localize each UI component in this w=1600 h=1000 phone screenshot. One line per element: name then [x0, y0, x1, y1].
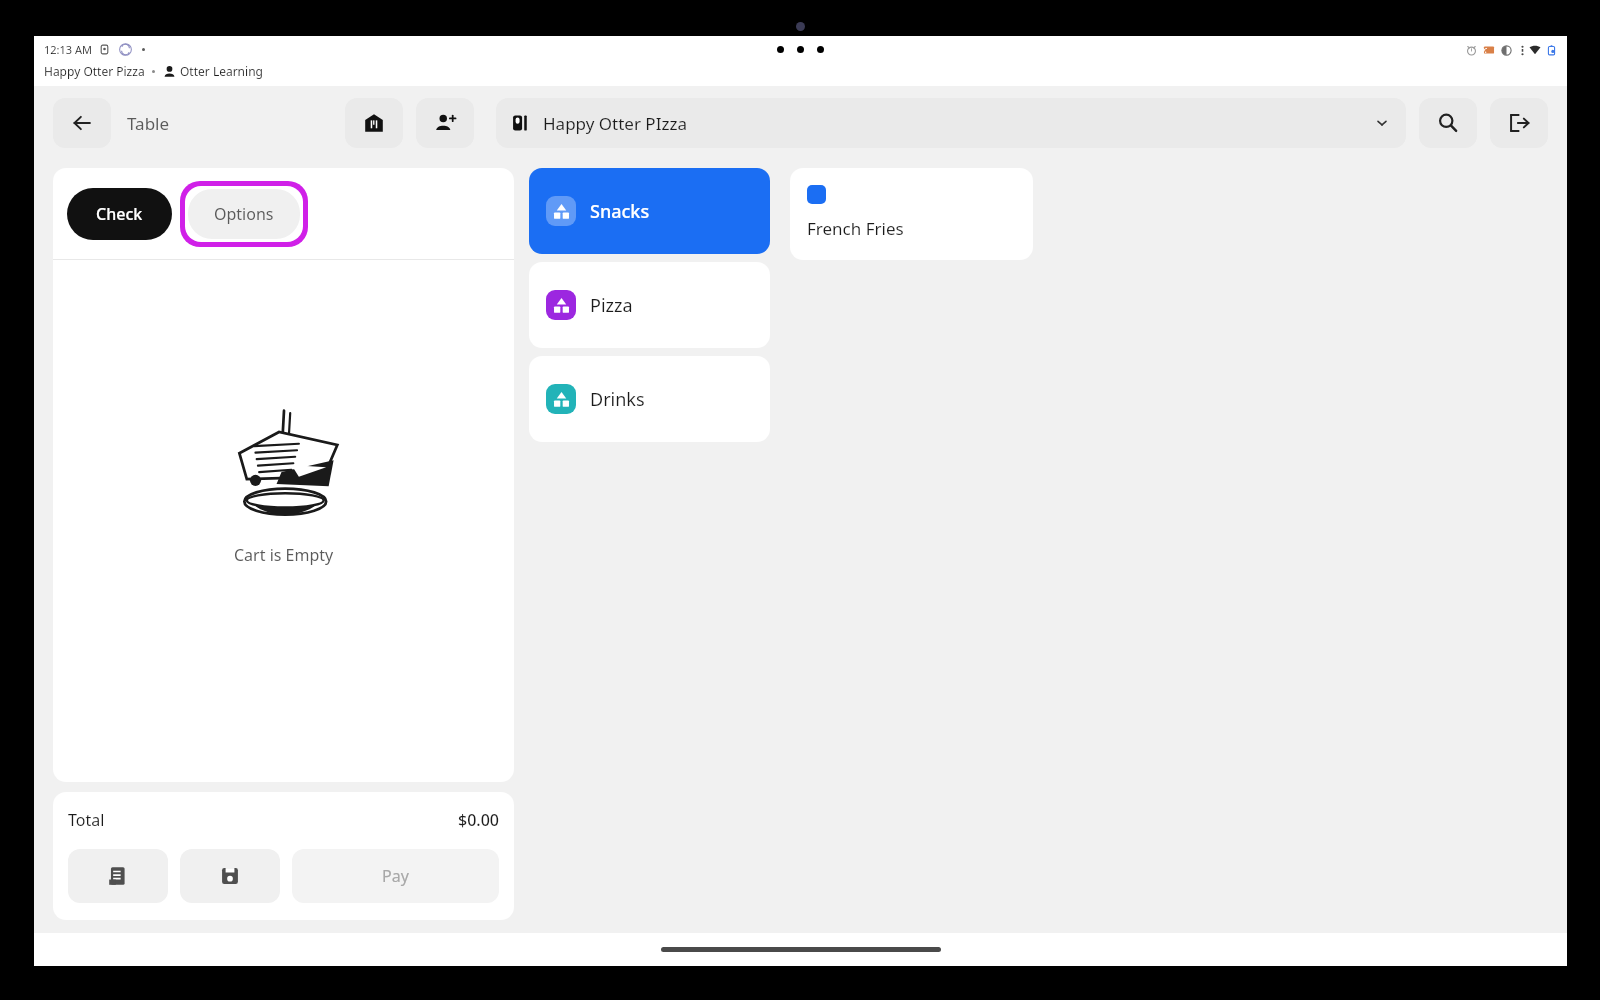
- button[interactable]: Add guest: [416, 98, 474, 148]
- staticText: Check: [96, 203, 143, 225]
- staticText: Snacks: [590, 199, 650, 224]
- staticText: 12:13 AM: [44, 42, 92, 57]
- staticText: Pizza: [590, 293, 633, 318]
- button[interactable]: Snacks: [529, 168, 770, 254]
- button[interactable]: Log out: [1490, 98, 1548, 148]
- button[interactable]: Options: [188, 189, 300, 239]
- button[interactable]: Pizza: [529, 262, 770, 348]
- button[interactable]: Back: [53, 98, 111, 148]
- staticText: Happy Otter Pizza: [44, 63, 145, 79]
- button[interactable]: Drinks: [529, 356, 770, 442]
- button[interactable]: Save: [180, 849, 280, 903]
- button[interactable]: Happy Otter PIzza: [496, 98, 1406, 148]
- button[interactable]: Search: [1419, 98, 1477, 148]
- staticText: Total: [68, 809, 105, 831]
- staticText: Cart is Empty: [234, 544, 334, 566]
- staticText: Otter Learning: [180, 63, 263, 79]
- button[interactable]: Check: [67, 188, 172, 240]
- button[interactable]: Restaurant: [345, 98, 403, 148]
- button[interactable]: French Fries: [790, 168, 1033, 260]
- staticText: Drinks: [590, 387, 645, 412]
- staticText: Happy Otter PIzza: [543, 112, 687, 135]
- staticText: Table: [127, 112, 170, 135]
- staticText: French Fries: [807, 217, 904, 240]
- staticText: Pay: [382, 865, 409, 887]
- button[interactable]: Pay: [292, 849, 499, 903]
- staticText: Options: [214, 203, 274, 225]
- staticText: $0.00: [458, 809, 499, 831]
- button[interactable]: Print receipt: [68, 849, 168, 903]
